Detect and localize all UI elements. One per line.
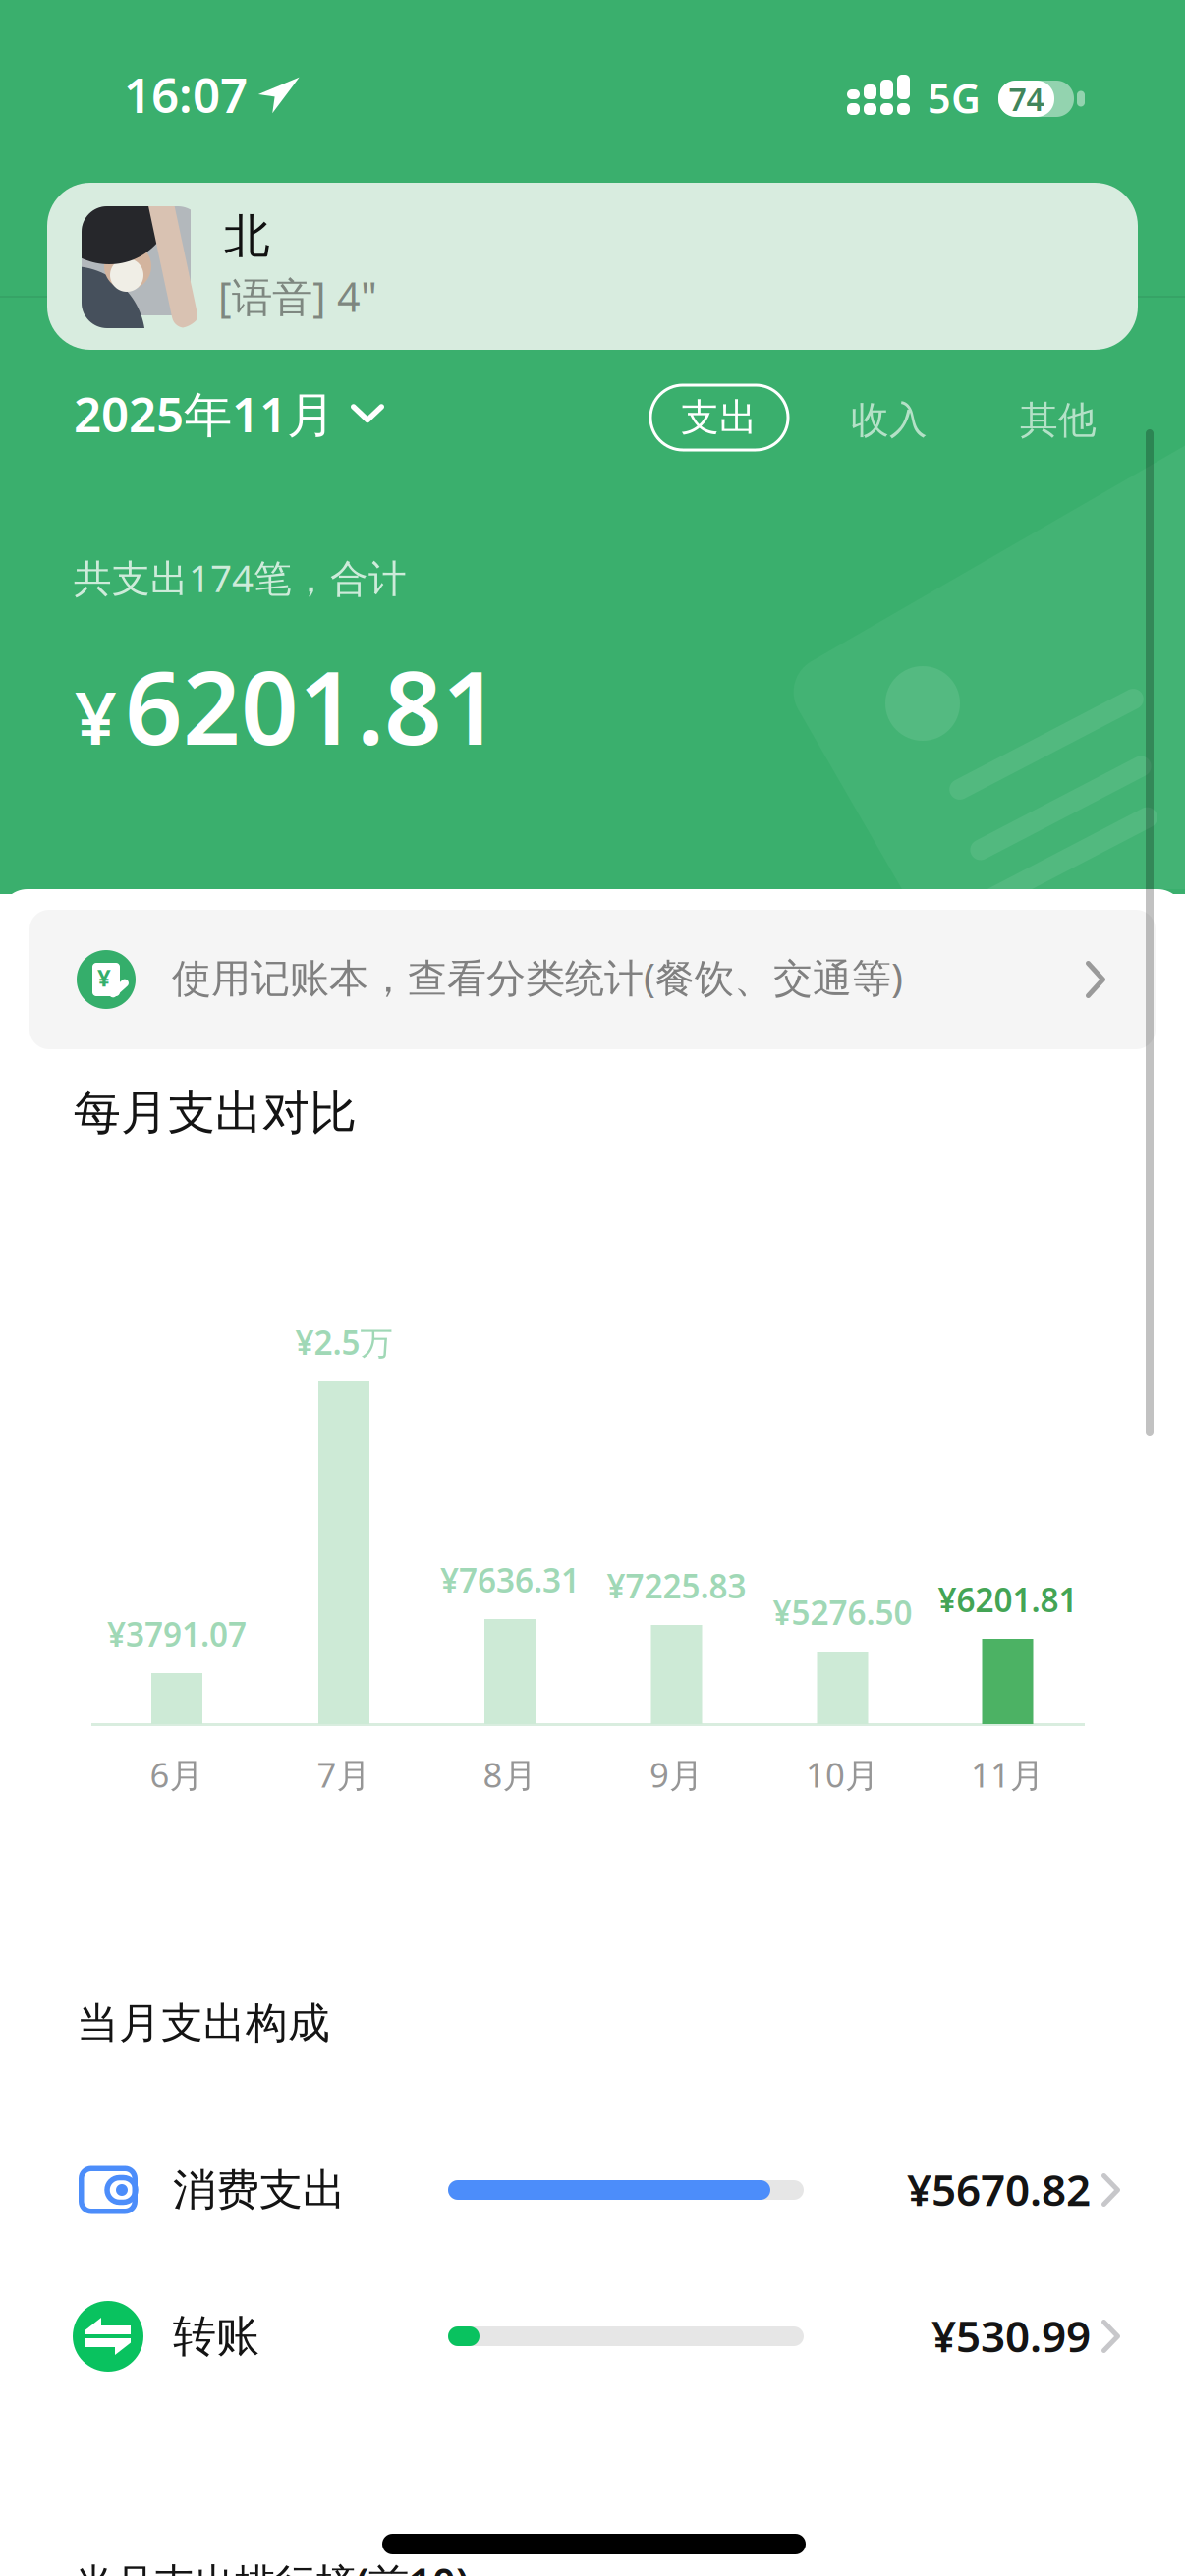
staticText: 转账 [173,2310,259,2363]
button[interactable]: 支出 [650,385,788,450]
button[interactable]: ¥ [29,910,1156,1049]
staticText: 消费支出 [173,2163,346,2216]
staticText: 使用记账本，查看分类统计(餐饮、交通等) [172,951,903,1003]
button[interactable]: 北 [47,183,1138,350]
staticText: 收入 [851,397,928,444]
button[interactable]: 其他 [1020,397,1097,444]
staticText: ¥5670.82 [907,2160,1091,2218]
staticText: 11月 [971,1752,1044,1797]
staticText: 7月 [317,1752,371,1797]
staticText: 6月 [150,1752,204,1797]
staticText: 北 [224,208,270,265]
staticText: 16:07 [124,62,248,126]
staticText: ¥3791.07 [107,1612,247,1656]
button[interactable]: 转账 [0,0,1185,2576]
staticText: 每月支出对比 [74,1084,357,1142]
staticText: 2025年11月 [74,381,335,446]
staticText: ¥7225.83 [607,1564,746,1607]
staticText: 其他 [1020,397,1097,444]
staticText: 当月支出排行榜(前10) [74,2555,469,2576]
staticText: 共支出174笔，合计 [74,552,407,603]
staticText: 支出 [681,394,758,441]
staticText: ¥530.99 [931,2307,1091,2364]
staticText: ¥ [97,962,111,993]
staticText: [语音] 4" [218,269,377,323]
staticText: 8月 [483,1752,537,1797]
staticText: 6201.81 [125,639,500,773]
staticText: ¥2.5万 [295,1320,393,1364]
staticText: 74 [1009,78,1044,120]
staticText: 5G [928,71,981,125]
button[interactable]: 收入 [851,397,928,444]
button[interactable]: 消费支出 [0,0,1185,2576]
staticText: 当月支出构成 [77,1997,330,2049]
staticText: ¥6201.81 [938,1578,1077,1621]
staticText: 10月 [806,1752,879,1797]
staticText: ¥5276.50 [773,1590,912,1634]
staticText: ¥ [75,668,117,765]
staticText: 9月 [649,1752,704,1797]
staticText: ¥7636.31 [440,1558,580,1602]
button[interactable]: 2025年11月 [74,381,384,446]
